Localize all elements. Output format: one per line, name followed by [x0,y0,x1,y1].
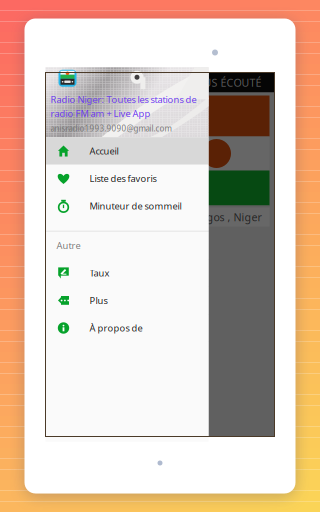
staticText: Minuteur de sommeil [89,200,181,212]
staticText: Liste des favoris [89,172,156,185]
button[interactable]: Taux [45,259,208,287]
staticText: Radio Niger: Toutes les stations de [50,93,196,106]
staticText: Accueil [89,145,118,157]
button[interactable]: Plus [45,287,208,314]
button[interactable]: Minuteur de sommeil [45,192,208,220]
staticText: Autre [56,239,80,252]
button[interactable]: Liste des favoris [45,165,208,192]
staticText: radio FM am + Live App [50,107,150,119]
staticText: gos , Niger [206,210,261,224]
staticText: À propos de [89,322,142,334]
staticText: Plus [89,294,107,307]
staticText: anisradio1993.9090@gmail.com [50,123,171,134]
staticText: Taux [89,267,109,279]
button[interactable]: Accueil [45,137,208,165]
button[interactable]: À propos de [45,314,208,342]
staticText: PLUS ÉCOUTÉ [192,75,261,90]
